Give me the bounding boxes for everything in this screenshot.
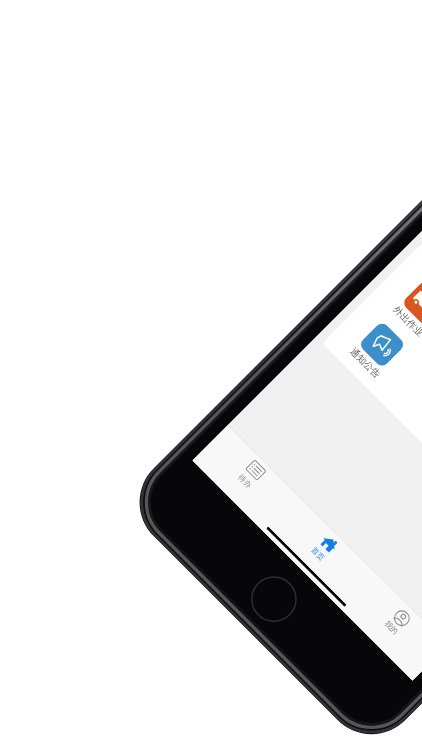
button[interactable]: 我的 xyxy=(339,571,422,680)
staticText: 我的 xyxy=(382,619,400,637)
staticText: 首页 xyxy=(308,545,327,564)
staticText: 待办 xyxy=(236,473,254,491)
staticText: 通知公告 xyxy=(339,338,390,389)
button[interactable]: 待办 xyxy=(192,424,301,533)
button[interactable]: Home xyxy=(241,566,307,632)
button[interactable]: 通知公告 xyxy=(332,310,417,395)
button[interactable]: 外出作业 xyxy=(375,268,422,353)
button[interactable]: 首页 xyxy=(265,497,375,607)
staticText: 外出作业 xyxy=(382,296,422,347)
